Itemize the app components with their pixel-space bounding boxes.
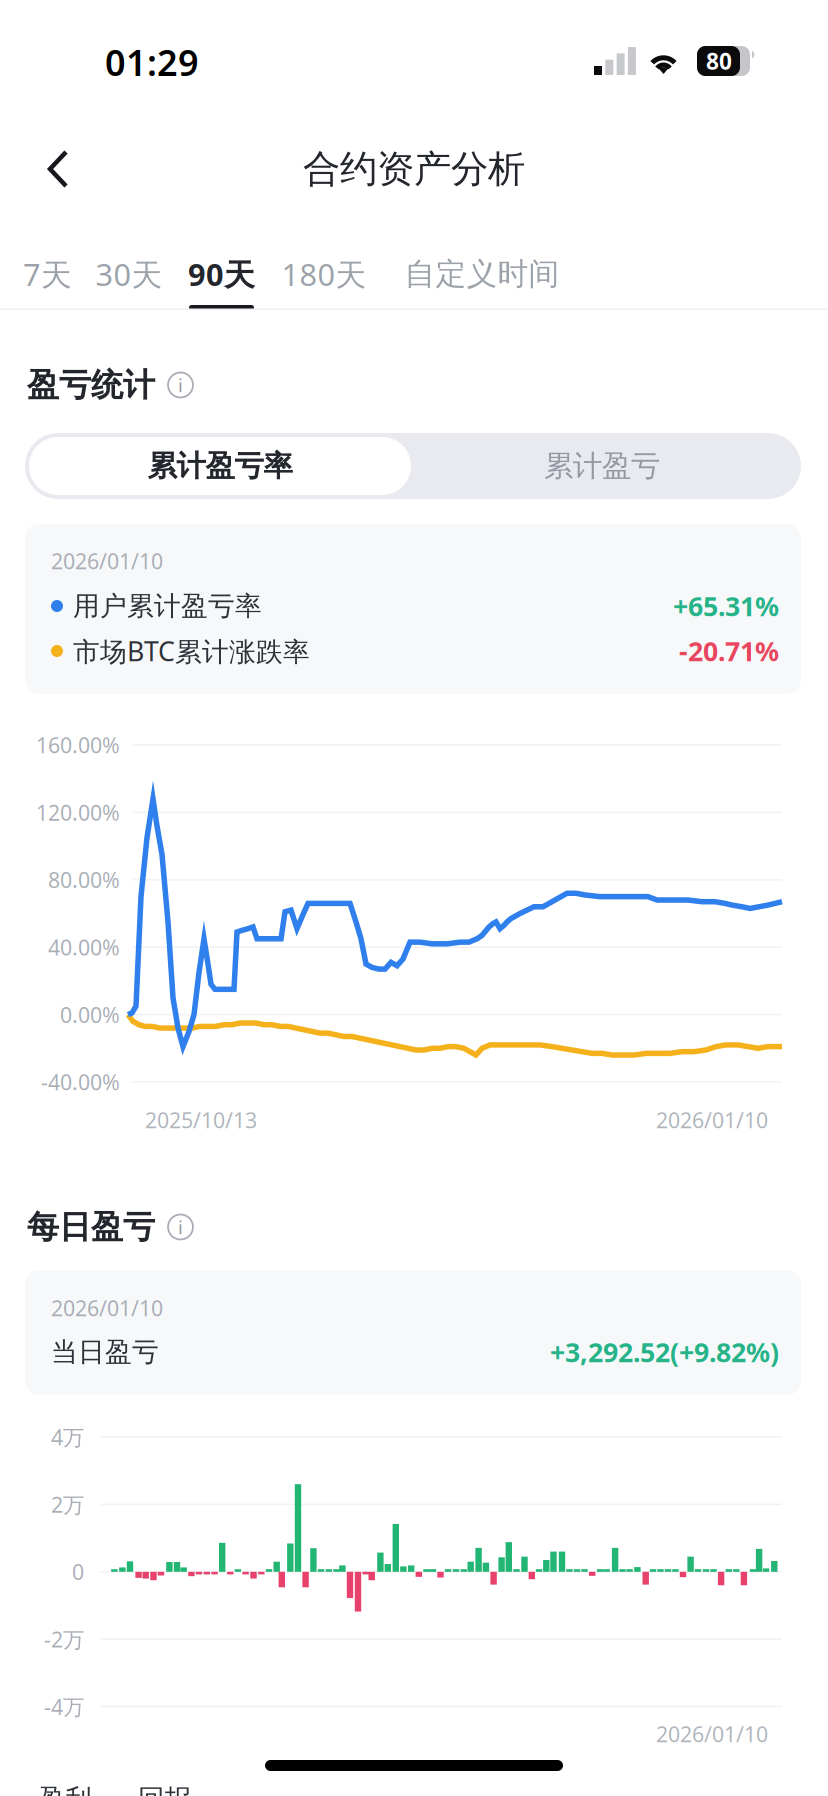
button[interactable]: Back xyxy=(15,131,101,207)
staticText: 用户累计盈亏率 xyxy=(73,590,262,622)
staticText: +3,292.52(+9.82%) xyxy=(550,1334,779,1370)
staticText: 90天 xyxy=(188,254,255,294)
button[interactable]: 自定义时间 xyxy=(389,238,575,310)
staticText: i xyxy=(178,1215,183,1239)
staticText: 累计盈亏 xyxy=(544,448,660,484)
staticText: 2025/10/13 xyxy=(145,1106,257,1134)
staticText: 合约资产分析 xyxy=(303,146,525,192)
staticText: i xyxy=(178,373,183,397)
staticText: 180天 xyxy=(281,254,366,294)
staticText: 当日盈亏 xyxy=(51,1336,159,1368)
staticText: 2026/01/10 xyxy=(656,1720,768,1748)
staticText: 累计盈亏率 xyxy=(147,448,292,484)
staticText: -4万 xyxy=(44,1692,84,1721)
button[interactable]: 累计盈亏率 xyxy=(29,437,411,495)
button[interactable]: 90天 xyxy=(175,238,268,310)
staticText: 160.00% xyxy=(36,731,120,759)
staticText: 2026/01/10 xyxy=(51,547,163,575)
staticText: -40.00% xyxy=(41,1068,120,1096)
staticText: 每日盈亏 xyxy=(27,1207,155,1247)
button[interactable]: 7天 xyxy=(12,238,83,310)
staticText: 2万 xyxy=(51,1490,84,1518)
button[interactable]: 累计盈亏 xyxy=(411,437,793,495)
staticText: 2026/01/10 xyxy=(656,1106,768,1134)
staticText: -20.71% xyxy=(679,633,779,669)
staticText: 0 xyxy=(72,1558,84,1586)
staticText: 40.00% xyxy=(48,933,120,961)
button[interactable]: 180天 xyxy=(268,238,380,310)
staticText: 30天 xyxy=(95,254,162,294)
staticText: +65.31% xyxy=(673,588,779,624)
staticText: 盈利 xyxy=(38,1783,92,1796)
staticText: 120.00% xyxy=(36,798,120,826)
staticText: 7天 xyxy=(23,254,72,294)
staticText: 0.00% xyxy=(60,1000,120,1029)
staticText: 80.00% xyxy=(48,866,120,894)
staticText: 回报 xyxy=(138,1783,192,1796)
staticText: -2万 xyxy=(44,1625,84,1653)
staticText: 80 xyxy=(706,46,732,76)
staticText: 盈亏统计 xyxy=(27,365,155,405)
staticText: 市场BTC累计涨跌率 xyxy=(73,633,310,669)
staticText: 01:29 xyxy=(105,38,199,86)
staticText: 2026/01/10 xyxy=(51,1294,163,1322)
button[interactable]: 30天 xyxy=(83,238,175,310)
staticText: 自定义时间 xyxy=(404,255,559,293)
staticText: 4万 xyxy=(51,1423,84,1451)
